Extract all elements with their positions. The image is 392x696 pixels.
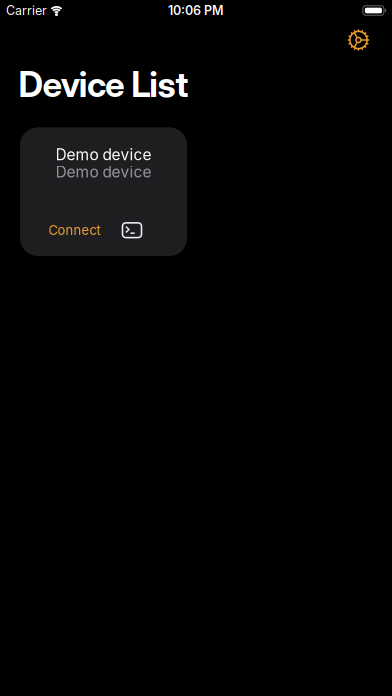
- staticText: Device List: [18, 63, 188, 105]
- staticText: Demo device: [55, 163, 151, 181]
- button[interactable]: Connect: [48, 222, 100, 238]
- button[interactable]: Open terminal: [122, 223, 141, 238]
- staticText: Connect: [48, 222, 100, 238]
- button[interactable]: Settings: [347, 29, 369, 51]
- staticText: Carrier: [6, 3, 47, 18]
- staticText: 10:06 PM: [168, 3, 224, 18]
- staticText: Demo device: [55, 145, 151, 164]
